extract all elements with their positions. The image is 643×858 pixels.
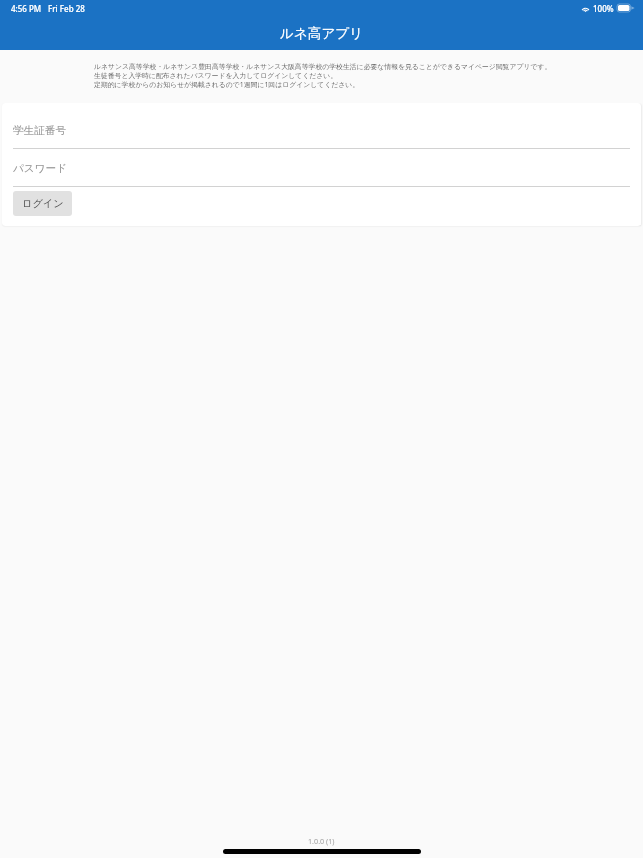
staticText: ルネ高アプリ	[280, 25, 364, 42]
staticText: 1.0.0 (1)	[308, 836, 335, 846]
other: Wi-Fi connected	[581, 5, 590, 12]
staticText: 学生証番号	[13, 124, 66, 137]
button[interactable]: パスワード	[2, 162, 641, 187]
staticText: 生徒番号と入学時に配布されたパスワードを入力してログインしてください。	[94, 71, 338, 80]
staticText: 定期的に学校からのお知らせが掲載されるので1週間に1回はログインしてください。	[94, 80, 360, 89]
other: Battery full	[617, 4, 632, 12]
button[interactable]: 学生証番号	[2, 124, 641, 149]
staticText: 100%	[593, 3, 614, 14]
staticText: パスワード	[13, 162, 67, 175]
staticText: Fri Feb 28	[48, 3, 85, 14]
staticText: ログイン	[22, 197, 64, 210]
staticText: ルネサンス高等学校・ルネサンス豊田高等学校・ルネサンス大阪高等学校の学校生活に必…	[94, 62, 552, 71]
staticText: 4:56 PM	[11, 3, 42, 14]
button[interactable]: ログイン	[13, 191, 72, 216]
